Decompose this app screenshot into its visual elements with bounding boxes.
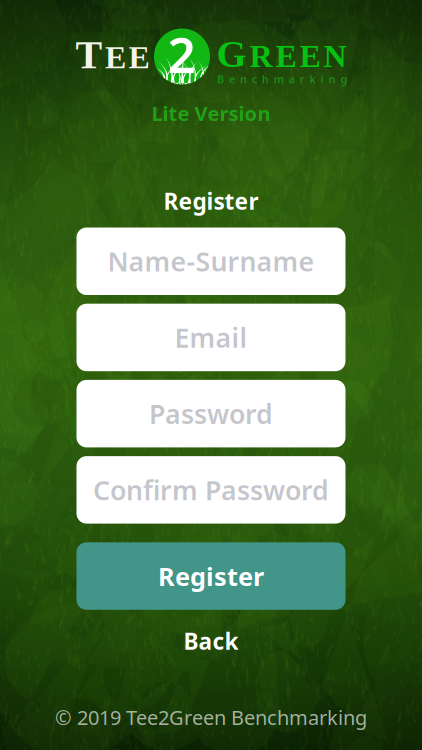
staticText: © 2019 Tee2Green Benchmarking: [55, 704, 367, 731]
staticText: n: [328, 72, 335, 86]
staticText: m: [274, 72, 284, 86]
button[interactable]: Register: [76, 542, 345, 610]
staticText: Lite Version: [151, 100, 270, 127]
staticText: Password: [149, 396, 273, 431]
staticText: c: [252, 72, 257, 86]
staticText: E: [275, 38, 296, 74]
staticText: N: [323, 38, 346, 74]
staticText: B: [217, 72, 224, 86]
button[interactable]: Password: [76, 380, 345, 447]
staticText: Confirm Password: [93, 472, 329, 507]
staticText: Email: [174, 320, 247, 355]
staticText: T: [75, 32, 102, 77]
staticText: e: [229, 72, 235, 86]
staticText: E: [299, 38, 320, 74]
button[interactable]: Confirm Password: [76, 456, 345, 524]
staticText: r: [300, 72, 305, 86]
staticText: g: [340, 72, 347, 86]
staticText: a: [289, 72, 295, 86]
staticText: E: [105, 40, 126, 75]
staticText: Name-Surname: [107, 243, 314, 279]
staticText: k: [310, 72, 316, 86]
staticText: n: [240, 72, 247, 86]
staticText: h: [262, 72, 269, 86]
staticText: Register: [163, 186, 258, 216]
staticText: Back: [183, 626, 238, 656]
staticText: G: [216, 32, 246, 75]
staticText: R: [249, 38, 272, 74]
button[interactable]: Back: [151, 624, 271, 658]
button[interactable]: Name-Surname: [76, 227, 345, 295]
staticText: i: [321, 72, 324, 86]
staticText: E: [128, 40, 149, 75]
staticText: Register: [158, 559, 264, 593]
staticText: 2: [167, 21, 195, 87]
button[interactable]: Email: [76, 304, 345, 371]
